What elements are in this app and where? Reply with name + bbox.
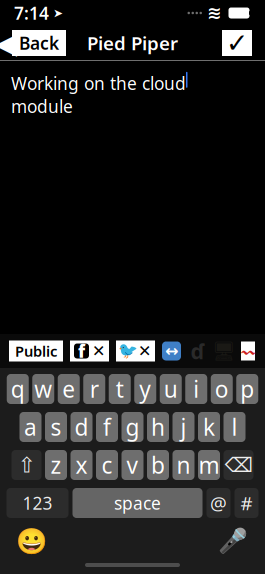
staticText: k: [203, 412, 215, 442]
staticText: a: [24, 412, 37, 442]
staticText: y: [139, 374, 151, 404]
staticText: q: [11, 374, 25, 404]
button[interactable]: p: [236, 374, 258, 404]
staticText: ➤: [49, 6, 63, 20]
button[interactable]: Display: [214, 341, 234, 360]
button[interactable]: 123: [6, 488, 68, 518]
button[interactable]: ⇧: [11, 450, 41, 480]
staticText: j: [180, 412, 186, 442]
staticText: ↔: [165, 342, 178, 360]
button[interactable]: m: [198, 450, 220, 480]
staticText: 🐦: [117, 342, 137, 360]
button[interactable]: u: [160, 374, 182, 404]
button[interactable]: Tumblr: [162, 341, 181, 360]
button[interactable]: a: [19, 412, 41, 442]
staticText: f: [78, 339, 85, 362]
staticText: n: [176, 450, 190, 480]
button[interactable]: #: [234, 488, 258, 518]
button[interactable]: ◀: [0, 30, 66, 56]
staticText: f: [103, 412, 111, 442]
staticText: z: [50, 450, 61, 480]
button[interactable]: n: [172, 450, 194, 480]
button[interactable]: b: [147, 450, 169, 480]
staticText: 123: [22, 491, 52, 514]
button[interactable]: g: [121, 412, 143, 442]
button[interactable]: w: [32, 374, 54, 404]
staticText: ✓: [226, 28, 248, 58]
button[interactable]: q: [7, 374, 29, 404]
staticText: Back: [19, 31, 59, 54]
staticText: w: [34, 374, 52, 404]
button[interactable]: v: [121, 450, 143, 480]
staticText: c: [101, 450, 112, 480]
staticText: i: [193, 374, 199, 404]
staticText: s: [50, 412, 61, 442]
staticText: ⇧: [17, 453, 35, 477]
staticText: 🎤: [218, 527, 248, 555]
staticText: m: [198, 450, 219, 480]
staticText: d: [74, 412, 88, 442]
button[interactable]: s: [45, 412, 67, 442]
button[interactable]: Twitter off: [116, 340, 155, 361]
staticText: 😀: [16, 526, 48, 555]
button[interactable]: ⌫: [223, 450, 253, 480]
staticText: 〰: [241, 342, 254, 360]
staticText: x: [75, 450, 87, 480]
staticText: p: [240, 374, 254, 404]
staticText: ≋: [207, 3, 222, 23]
button[interactable]: space: [72, 488, 202, 518]
button[interactable]: l: [223, 412, 245, 442]
staticText: o: [215, 374, 229, 404]
staticText: Pied Piper: [87, 31, 178, 55]
button[interactable]: x: [70, 450, 92, 480]
staticText: e: [62, 374, 75, 404]
staticText: @: [210, 491, 227, 515]
button[interactable]: i: [185, 374, 207, 404]
button[interactable]: y: [134, 374, 156, 404]
staticText: l: [231, 412, 237, 442]
button[interactable]: Dictation: [219, 527, 247, 555]
button[interactable]: Dribbble: [188, 341, 207, 360]
button[interactable]: More: [241, 341, 255, 360]
staticText: ɗ: [190, 337, 204, 365]
button[interactable]: f: [96, 412, 118, 442]
button[interactable]: d: [70, 412, 92, 442]
staticText: v: [126, 450, 138, 480]
button[interactable]: @: [206, 488, 230, 518]
staticText: b: [151, 450, 165, 480]
button[interactable]: Emoji keyboard: [18, 527, 46, 555]
staticText: space: [114, 491, 161, 514]
button[interactable]: c: [96, 450, 118, 480]
staticText: #: [240, 491, 252, 515]
button[interactable]: t: [109, 374, 131, 404]
staticText: u: [164, 374, 178, 404]
staticText: h: [151, 412, 165, 442]
button[interactable]: Facebook off: [70, 340, 109, 361]
staticText: 🖥: [212, 340, 236, 362]
button[interactable]: j: [172, 412, 194, 442]
staticText: t: [116, 374, 124, 404]
staticText: g: [125, 412, 139, 442]
button[interactable]: Public: [9, 340, 63, 361]
button[interactable]: k: [198, 412, 220, 442]
staticText: Working on the cloud module: [11, 72, 186, 118]
button[interactable]: o: [211, 374, 233, 404]
button[interactable]: e: [58, 374, 80, 404]
staticText: ✕: [92, 342, 105, 360]
staticText: r: [90, 374, 99, 404]
button[interactable]: Done: [222, 30, 252, 56]
staticText: ⌫: [224, 454, 252, 476]
staticText: ◀: [0, 26, 17, 60]
button[interactable]: z: [45, 450, 67, 480]
staticText: 7:14: [14, 1, 49, 24]
button[interactable]: r: [83, 374, 105, 404]
staticText: Public: [15, 341, 57, 361]
staticText: ✕: [138, 342, 151, 360]
button[interactable]: h: [147, 412, 169, 442]
